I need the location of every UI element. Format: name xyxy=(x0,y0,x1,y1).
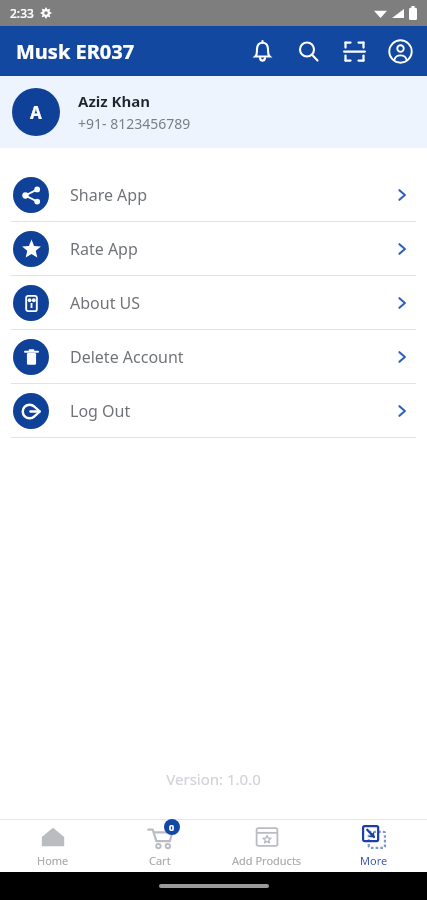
button[interactable]: More xyxy=(320,820,427,872)
button[interactable]: Home xyxy=(0,820,106,872)
button[interactable]: Scan xyxy=(339,36,369,66)
button[interactable]: Log Out xyxy=(0,384,427,438)
staticText: 2:33 xyxy=(10,5,34,21)
staticText: About US xyxy=(70,292,141,314)
staticText: Version: 1.0.0 xyxy=(0,769,427,789)
staticText: Share App xyxy=(70,184,148,206)
button[interactable]: Delete Account xyxy=(0,330,427,384)
button[interactable]: Search xyxy=(293,36,323,66)
staticText: Log Out xyxy=(70,400,131,422)
staticText: +91- 8123456789 xyxy=(78,114,191,133)
staticText: Musk ER037 xyxy=(16,38,135,65)
staticText: More xyxy=(360,853,388,868)
staticText: Home xyxy=(37,853,69,868)
staticText: Delete Account xyxy=(70,346,184,368)
staticText: A xyxy=(30,101,42,124)
button[interactable]: Profile xyxy=(385,36,415,66)
staticText: 0 xyxy=(169,821,175,833)
button[interactable]: Add Products xyxy=(213,820,320,872)
staticText: Cart xyxy=(149,853,171,868)
staticText: Aziz Khan xyxy=(78,91,151,111)
staticText: Add Products xyxy=(232,853,302,868)
button[interactable]: Rate App xyxy=(0,222,427,276)
button[interactable]: 0 xyxy=(106,820,213,872)
staticText: Rate App xyxy=(70,238,138,260)
button[interactable]: About US xyxy=(0,276,427,330)
button[interactable]: Share App xyxy=(0,168,427,222)
button[interactable]: A xyxy=(0,76,427,148)
button[interactable]: Notifications xyxy=(247,36,277,66)
